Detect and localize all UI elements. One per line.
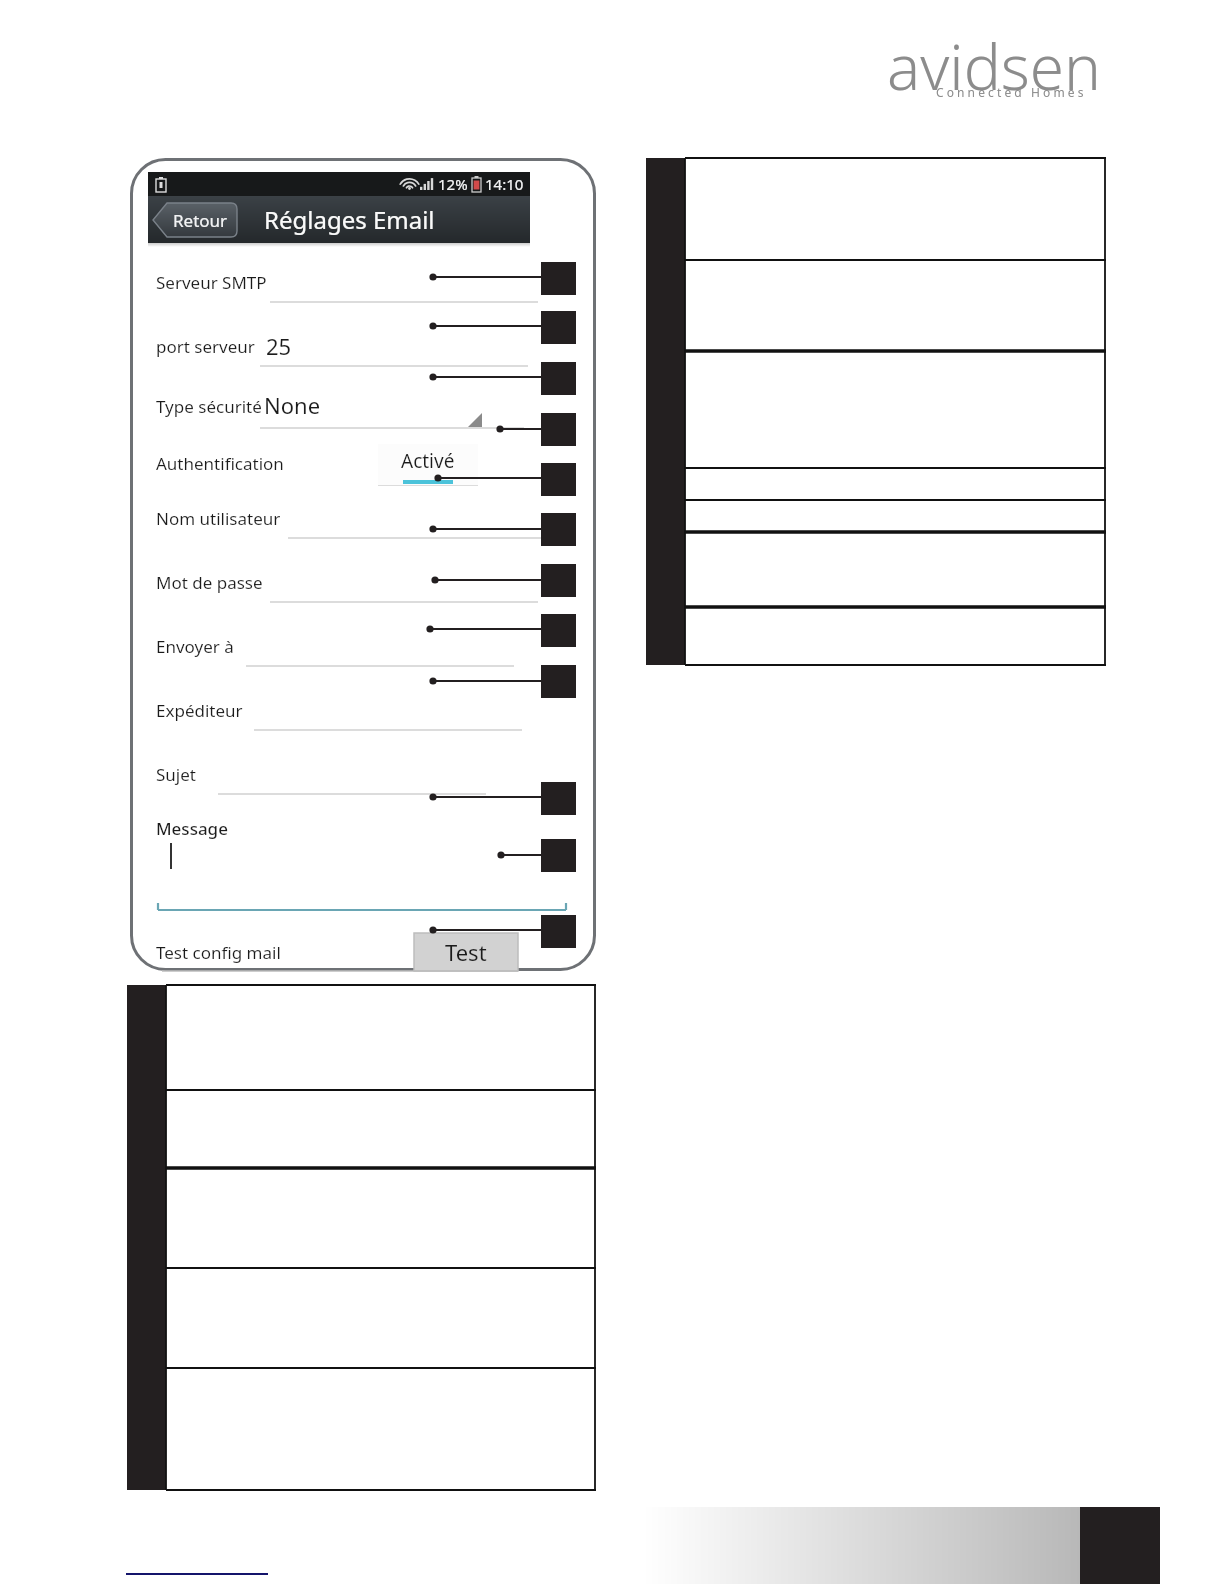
button[interactable]: port serveur <box>156 333 580 367</box>
staticText: Mot de passe <box>156 571 263 594</box>
staticText: avidsen <box>887 24 1101 102</box>
staticText: 12% <box>438 174 468 194</box>
button[interactable]: Envoyer à <box>156 633 580 667</box>
button[interactable]: Expéditeur <box>156 697 580 731</box>
staticText: Message <box>156 817 228 840</box>
staticText: None <box>264 390 321 420</box>
button[interactable]: Activé <box>378 444 478 486</box>
staticText: Réglages Email <box>264 203 435 236</box>
staticText: Type sécurité <box>156 395 262 418</box>
staticText: Sujet <box>156 763 196 786</box>
button[interactable]: Nom utilisateur <box>156 505 580 539</box>
button[interactable]: Retour <box>153 203 237 237</box>
staticText: Test config mail <box>156 941 281 964</box>
staticText: Retour <box>173 209 228 232</box>
button[interactable]: Serveur SMTP <box>156 269 580 303</box>
staticText: port serveur <box>156 335 255 358</box>
staticText: Activé <box>401 448 455 474</box>
button[interactable]: Message <box>156 817 580 913</box>
staticText: 14:10 <box>485 174 524 194</box>
button[interactable]: Test <box>414 933 518 971</box>
staticText: 25 <box>266 331 292 361</box>
staticText: Envoyer à <box>156 635 234 658</box>
button[interactable]: Type sécurité <box>156 393 580 429</box>
staticText: Nom utilisateur <box>156 507 281 530</box>
staticText: Serveur SMTP <box>156 271 267 294</box>
staticText: C o n n e c t e d H o m e s <box>936 84 1084 100</box>
staticText: Expéditeur <box>156 699 243 722</box>
button[interactable]: Sujet <box>156 761 580 795</box>
staticText: Authentification <box>156 452 284 475</box>
button[interactable]: Mot de passe <box>156 569 580 603</box>
staticText: Test <box>445 937 487 967</box>
